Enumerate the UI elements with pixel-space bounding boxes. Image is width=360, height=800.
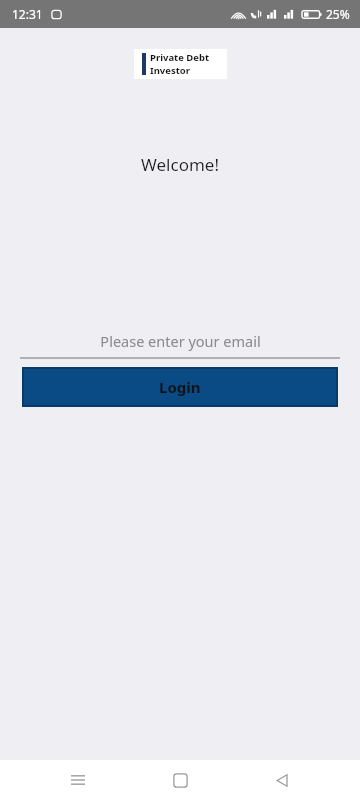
button[interactable]: Login (22, 367, 338, 407)
button[interactable]: Home (156, 760, 204, 800)
button[interactable]: Recent apps (54, 760, 102, 800)
staticText: Login (159, 377, 201, 397)
button[interactable]: Back (258, 760, 306, 800)
staticText: Private Debt (150, 51, 210, 64)
staticText: Please enter your email (100, 331, 261, 351)
staticText: 12:31 (12, 6, 43, 22)
button[interactable]: Please enter your email (20, 329, 340, 359)
staticText: Investor (150, 64, 191, 77)
staticText: 25% (326, 6, 350, 22)
staticText: Welcome! (141, 153, 219, 176)
